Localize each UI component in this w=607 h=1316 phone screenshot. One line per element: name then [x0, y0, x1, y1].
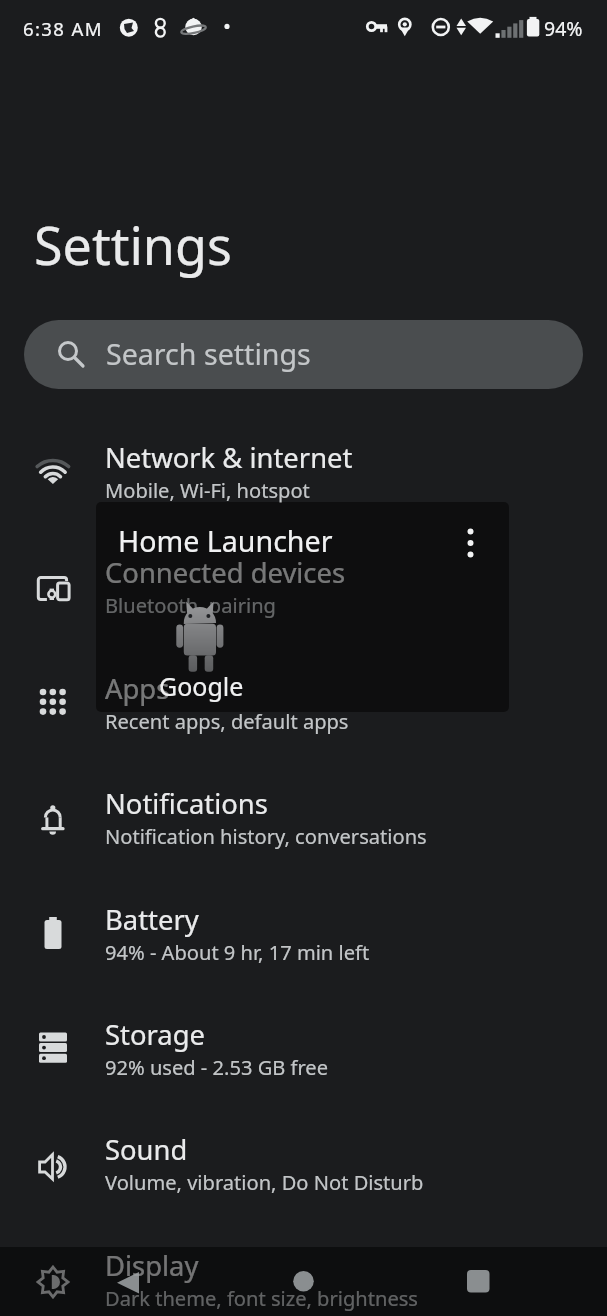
button[interactable] [0, 764, 607, 879]
staticText: 92% used - 2.53 GB free [105, 1054, 329, 1081]
staticText: Home Launcher [118, 521, 333, 560]
button[interactable] [94, 1247, 162, 1316]
staticText: Dark theme, font size, brightness [105, 1285, 418, 1312]
staticText: Search settings [106, 334, 311, 373]
button[interactable] [0, 880, 607, 995]
button[interactable]: Google [136, 652, 356, 707]
staticText: Storage [105, 1016, 205, 1053]
staticText: Notification history, conversations [105, 823, 427, 850]
staticText: 94% - About 9 hr, 17 min left [105, 939, 370, 966]
staticText: Mobile, Wi-Fi, hotspot [105, 477, 310, 504]
staticText: Notifications [105, 785, 268, 822]
staticText: Display [105, 1247, 199, 1284]
staticText: Volume, vibration, Do Not Disturb [105, 1169, 424, 1196]
staticText: Network & internet [105, 439, 353, 476]
staticText: Bluetooth, pairing [105, 592, 276, 619]
staticText: Settings [34, 209, 232, 280]
button[interactable]: Search settings [24, 320, 583, 389]
staticText: Google [159, 669, 244, 703]
staticText: Recent apps, default apps [105, 708, 349, 735]
staticText: 6:38 AM [23, 16, 103, 41]
button[interactable] [444, 1247, 512, 1316]
staticText: Apps [105, 670, 170, 707]
button[interactable] [269, 1247, 337, 1316]
staticText: Sound [105, 1131, 188, 1168]
button[interactable] [0, 533, 607, 648]
button[interactable] [0, 1110, 607, 1225]
staticText: Battery [105, 901, 199, 938]
button[interactable] [0, 649, 607, 764]
staticText: Connected devices [105, 554, 346, 591]
staticText: 94% [544, 15, 583, 42]
button[interactable] [0, 995, 607, 1110]
button[interactable] [0, 1226, 607, 1316]
button[interactable] [0, 418, 607, 533]
